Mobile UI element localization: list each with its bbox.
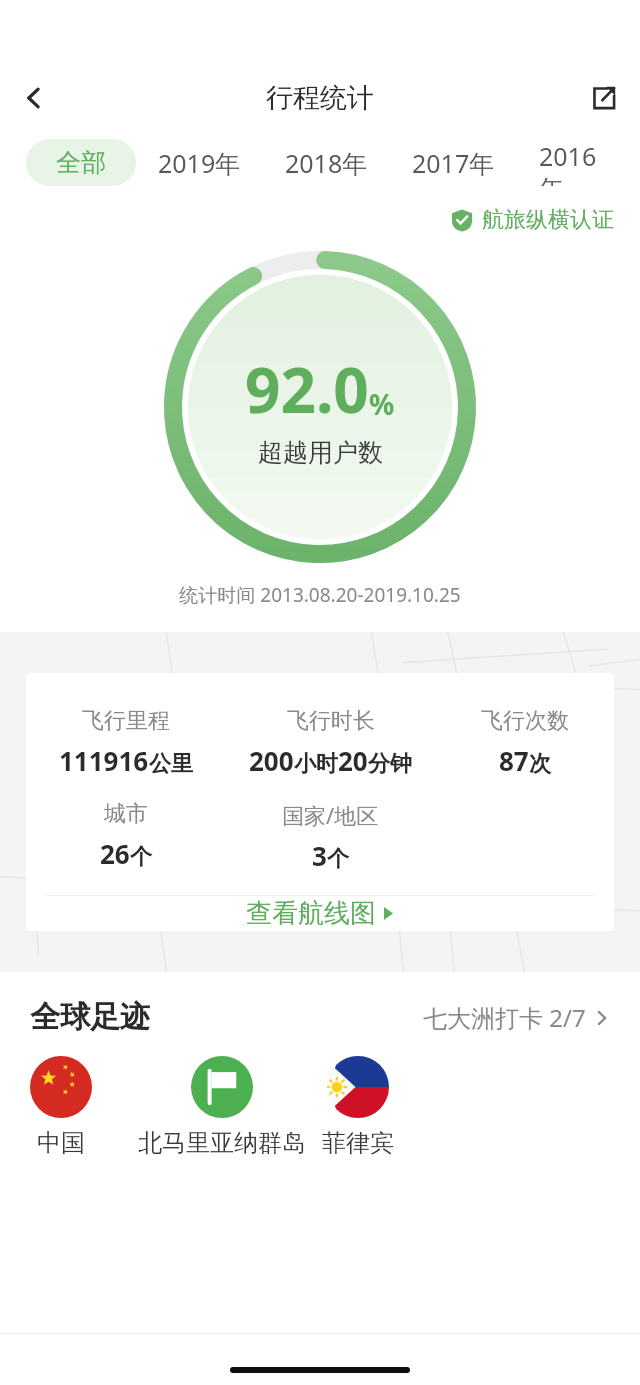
staticText: 查看航线图: [246, 897, 376, 930]
staticText: 2018年: [285, 146, 368, 180]
staticText: 飞行次数: [481, 707, 569, 735]
button[interactable]: 全部: [26, 139, 136, 186]
button[interactable]: Share: [580, 74, 628, 122]
staticText: 个: [130, 843, 152, 871]
staticText: 统计时间 2013.08.20-2019.10.25: [0, 582, 640, 608]
staticText: 航旅纵横认证: [482, 206, 614, 234]
staticText: 超越用户数: [258, 437, 383, 468]
staticText: 公里: [149, 750, 193, 778]
staticText: 飞行时长: [287, 707, 375, 735]
button[interactable]: 2018年: [263, 139, 390, 186]
staticText: 次: [529, 750, 551, 778]
button[interactable]: Back: [10, 74, 58, 122]
button[interactable]: 中国: [30, 1056, 92, 1158]
button[interactable]: 飞行里程: [26, 673, 614, 931]
staticText: 26: [100, 836, 130, 871]
button[interactable]: 2017年: [390, 139, 517, 186]
staticText: 87: [499, 743, 529, 778]
staticText: 2019年: [158, 146, 241, 180]
staticText: 3: [312, 838, 327, 873]
staticText: 20: [338, 743, 368, 778]
staticText: 2016年: [539, 139, 618, 186]
staticText: 国家/地区: [282, 800, 379, 830]
button[interactable]: 北马里亚纳群岛: [138, 1056, 306, 1158]
staticText: 飞行里程: [82, 707, 170, 735]
staticText: 全球足迹: [30, 998, 150, 1036]
staticText: 中国: [37, 1128, 85, 1158]
staticText: 分钟: [368, 750, 412, 778]
staticText: 北马里亚纳群岛: [138, 1128, 306, 1158]
button[interactable]: 2016年: [517, 139, 640, 186]
staticText: 菲律宾: [322, 1128, 394, 1158]
staticText: 城市: [104, 800, 148, 828]
button[interactable]: 2019年: [136, 139, 263, 186]
button[interactable]: 菲律宾: [322, 1056, 394, 1158]
staticText: 92.0: [245, 347, 369, 431]
staticText: 个: [327, 845, 349, 873]
staticText: 全部: [56, 147, 106, 178]
staticText: 行程统计: [266, 81, 374, 115]
staticText: 111916: [59, 743, 149, 778]
staticText: %: [369, 385, 395, 423]
button[interactable]: 查看航线图: [26, 896, 614, 931]
staticText: 200: [249, 743, 294, 778]
staticText: 2017年: [412, 146, 495, 180]
staticText: 七大洲打卡 2/7: [423, 1001, 586, 1034]
button[interactable]: 七大洲打卡 2/7: [423, 1001, 610, 1034]
staticText: 小时: [294, 750, 338, 778]
